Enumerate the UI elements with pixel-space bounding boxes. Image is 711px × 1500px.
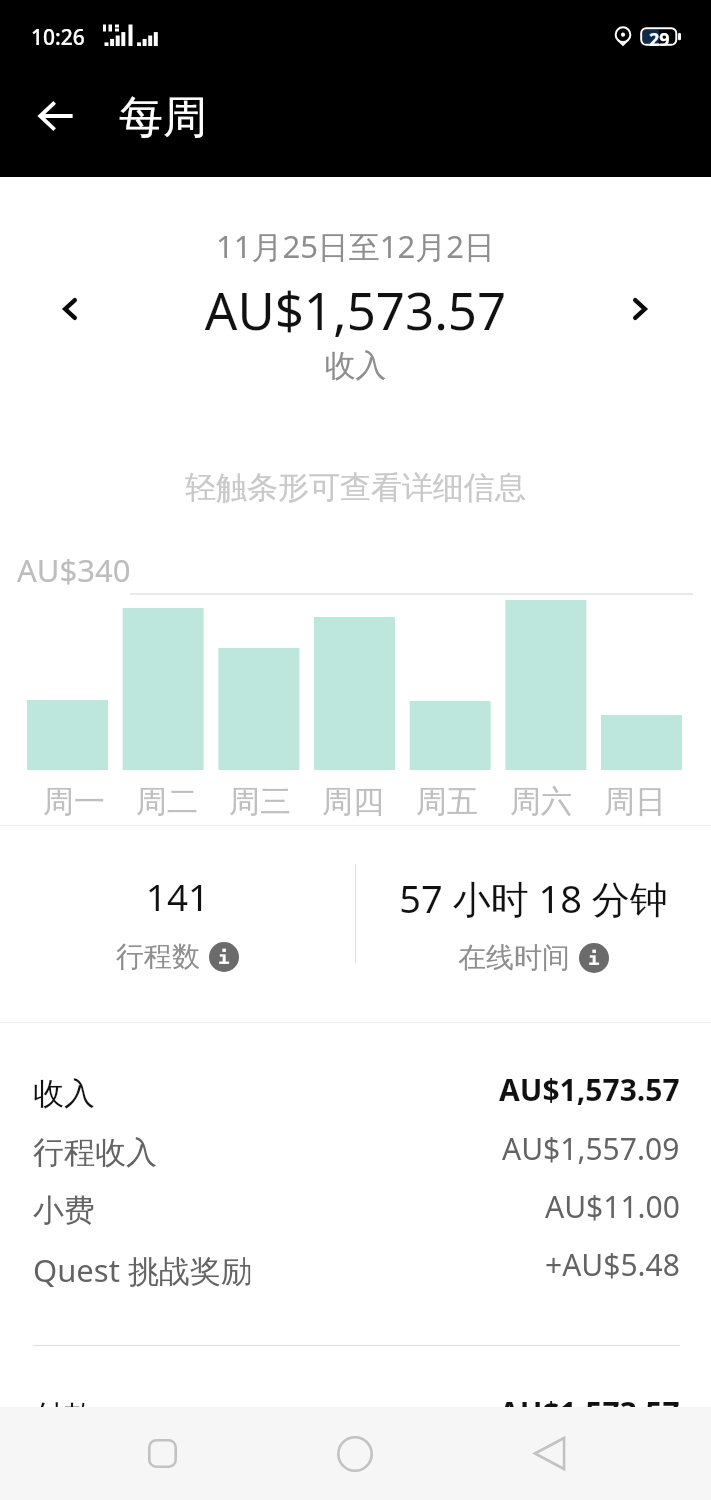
staticText: AU$1,573.57 — [0, 275, 711, 344]
button[interactable]: 141 — [0, 835, 355, 985]
staticText: 周六 — [510, 782, 572, 821]
staticText: 在线时间 — [458, 940, 570, 975]
staticText: AU$11.00 — [545, 1186, 680, 1227]
staticText: 29 — [649, 27, 670, 46]
staticText: 周三 — [229, 782, 291, 821]
button[interactable]: 小费 — [33, 1191, 678, 1237]
button[interactable]: Back — [502, 1407, 596, 1500]
staticText: 141 — [0, 871, 355, 921]
button[interactable]: 行程收入 — [33, 1133, 678, 1179]
staticText: 10:26 — [31, 23, 85, 52]
button[interactable]: 收入 — [33, 1074, 678, 1120]
button[interactable]: Home — [308, 1407, 402, 1500]
staticText: 收入 — [0, 346, 711, 385]
staticText: 收入 — [33, 1074, 95, 1113]
staticText: 每周 — [119, 90, 207, 145]
staticText: AU$1,573.57 — [499, 1392, 680, 1433]
staticText: Quest 挑战奖励 — [33, 1249, 252, 1291]
staticText: AU$1,557.09 — [502, 1128, 680, 1169]
button[interactable]: Previous week — [40, 279, 100, 339]
staticText: +AU$5.48 — [545, 1244, 680, 1285]
staticText: 周五 — [416, 782, 478, 821]
staticText: 周二 — [136, 782, 198, 821]
staticText: 行程数 — [116, 939, 200, 974]
staticText: AU$340 — [17, 549, 131, 591]
button[interactable]: 57 小时 18 分钟 — [356, 836, 711, 986]
staticText: 轻触条形可查看详细信息 — [0, 468, 711, 507]
button[interactable]: Next week — [610, 279, 670, 339]
staticText: 57 小时 18 分钟 — [356, 872, 711, 924]
staticText: 11月25日至12月2日 — [0, 225, 711, 267]
staticText: 小费 — [33, 1191, 95, 1230]
staticText: AU$1,573.57 — [499, 1069, 680, 1110]
staticText: 周四 — [322, 782, 384, 821]
staticText: 周一 — [43, 782, 105, 821]
staticText: 付款 — [33, 1397, 95, 1436]
button[interactable]: Quest 挑战奖励 — [33, 1249, 678, 1295]
button[interactable]: Back — [27, 87, 85, 145]
staticText: 行程收入 — [33, 1133, 157, 1172]
staticText: 周日 — [604, 782, 666, 821]
button[interactable]: 付款 — [33, 1397, 678, 1443]
button[interactable]: Recent apps — [115, 1407, 209, 1500]
